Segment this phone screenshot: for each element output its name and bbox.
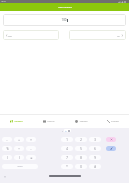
- button[interactable]: Suggestions: [65, 129, 70, 132]
- button[interactable]: 5: [75, 146, 87, 151]
- button[interactable]: +: [14, 137, 24, 142]
- button[interactable]: 0: [75, 164, 87, 169]
- staticText: in: [117, 34, 120, 37]
- button[interactable]: ≡: [26, 155, 36, 160]
- button[interactable]: 2: [75, 137, 87, 142]
- button[interactable]: 3: [89, 137, 101, 142]
- button[interactable]: 1: [61, 137, 73, 142]
- staticText: ): [19, 156, 20, 160]
- button[interactable]: 7: [61, 155, 73, 160]
- button[interactable]: 6: [89, 146, 101, 151]
- other: Next unit: [121, 34, 124, 37]
- button[interactable]: Voice input: [3, 175, 6, 178]
- button[interactable]: Enter: [106, 146, 116, 151]
- staticText: Themes: [79, 120, 88, 123]
- button[interactable]: Themes: [65, 115, 97, 128]
- button[interactable]: in: [69, 30, 126, 40]
- button[interactable]: Unit Convert: [0, 3, 129, 11]
- staticText: %: [6, 147, 9, 151]
- button[interactable]: (: [2, 155, 12, 160]
- staticText: ≡: [30, 156, 33, 159]
- staticText: 9:41: [1, 0, 6, 3]
- button[interactable]: Keyboard settings: [61, 130, 63, 132]
- button[interactable]: Backspace: [106, 137, 116, 142]
- staticText: Contact: [111, 120, 119, 123]
- staticText: 6: [94, 147, 96, 151]
- staticText: 100: [61, 18, 67, 22]
- staticText: Unit Convert: [58, 6, 72, 9]
- staticText: ×: [30, 138, 32, 142]
- button[interactable]: −: [26, 146, 36, 151]
- staticText: 9: [94, 156, 96, 160]
- staticText: 0: [80, 165, 82, 169]
- staticText: space: [17, 165, 23, 168]
- staticText: 2: [80, 138, 82, 142]
- button[interactable]: ): [14, 155, 24, 160]
- button[interactable]: ÷: [14, 146, 24, 151]
- button[interactable]: 100: [3, 14, 126, 26]
- button[interactable]: ×: [26, 137, 36, 142]
- staticText: −: [30, 147, 32, 151]
- staticText: ÷: [18, 147, 20, 151]
- staticText: History: [47, 120, 55, 123]
- button[interactable]: 4: [61, 146, 73, 151]
- staticText: 3: [94, 138, 96, 142]
- staticText: 5: [80, 147, 82, 151]
- other: Previous unit: [5, 34, 8, 37]
- button[interactable]: Previous unit: [3, 30, 59, 40]
- staticText: 7: [66, 156, 68, 160]
- staticText: #: [94, 165, 96, 169]
- staticText: 1: [66, 138, 68, 142]
- button[interactable]: Convert: [0, 115, 33, 128]
- staticText: 8: [80, 156, 82, 160]
- button[interactable]: −: [2, 137, 12, 142]
- staticText: −: [6, 138, 8, 142]
- staticText: Convert: [14, 120, 23, 123]
- staticText: 4: [66, 147, 68, 151]
- button[interactable]: History: [33, 115, 65, 128]
- button[interactable]: *: [61, 164, 73, 169]
- staticText: (: [7, 156, 8, 160]
- staticText: +: [18, 138, 20, 142]
- button[interactable]: 9: [89, 155, 101, 160]
- button[interactable]: #: [89, 164, 101, 169]
- button[interactable]: space: [2, 164, 38, 169]
- button[interactable]: 8: [75, 155, 87, 160]
- button[interactable]: Contact: [97, 115, 129, 128]
- staticText: cm: [8, 34, 12, 37]
- staticText: *: [66, 165, 68, 169]
- button[interactable]: %: [2, 146, 12, 151]
